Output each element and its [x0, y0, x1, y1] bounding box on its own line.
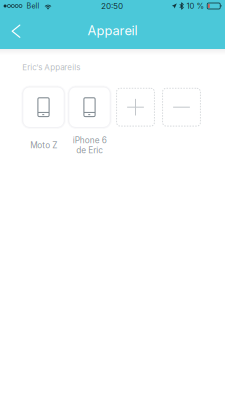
button[interactable]: Moto Z: [23, 87, 64, 158]
staticText: Bell: [27, 2, 40, 10]
staticText: 20:50: [101, 1, 123, 11]
button[interactable]: Back: [2, 15, 30, 46]
staticText: Moto Z: [30, 140, 57, 150]
staticText: Appareil: [87, 23, 137, 38]
button[interactable]: iPhone 6 de Eric: [69, 87, 110, 158]
staticText: Eric's Appareils: [22, 62, 80, 72]
button[interactable]: Add device: [115, 87, 156, 158]
button[interactable]: Remove device: [161, 87, 202, 158]
staticText: iPhone 6 de Eric: [72, 135, 106, 155]
staticText: 10 %: [186, 1, 204, 11]
